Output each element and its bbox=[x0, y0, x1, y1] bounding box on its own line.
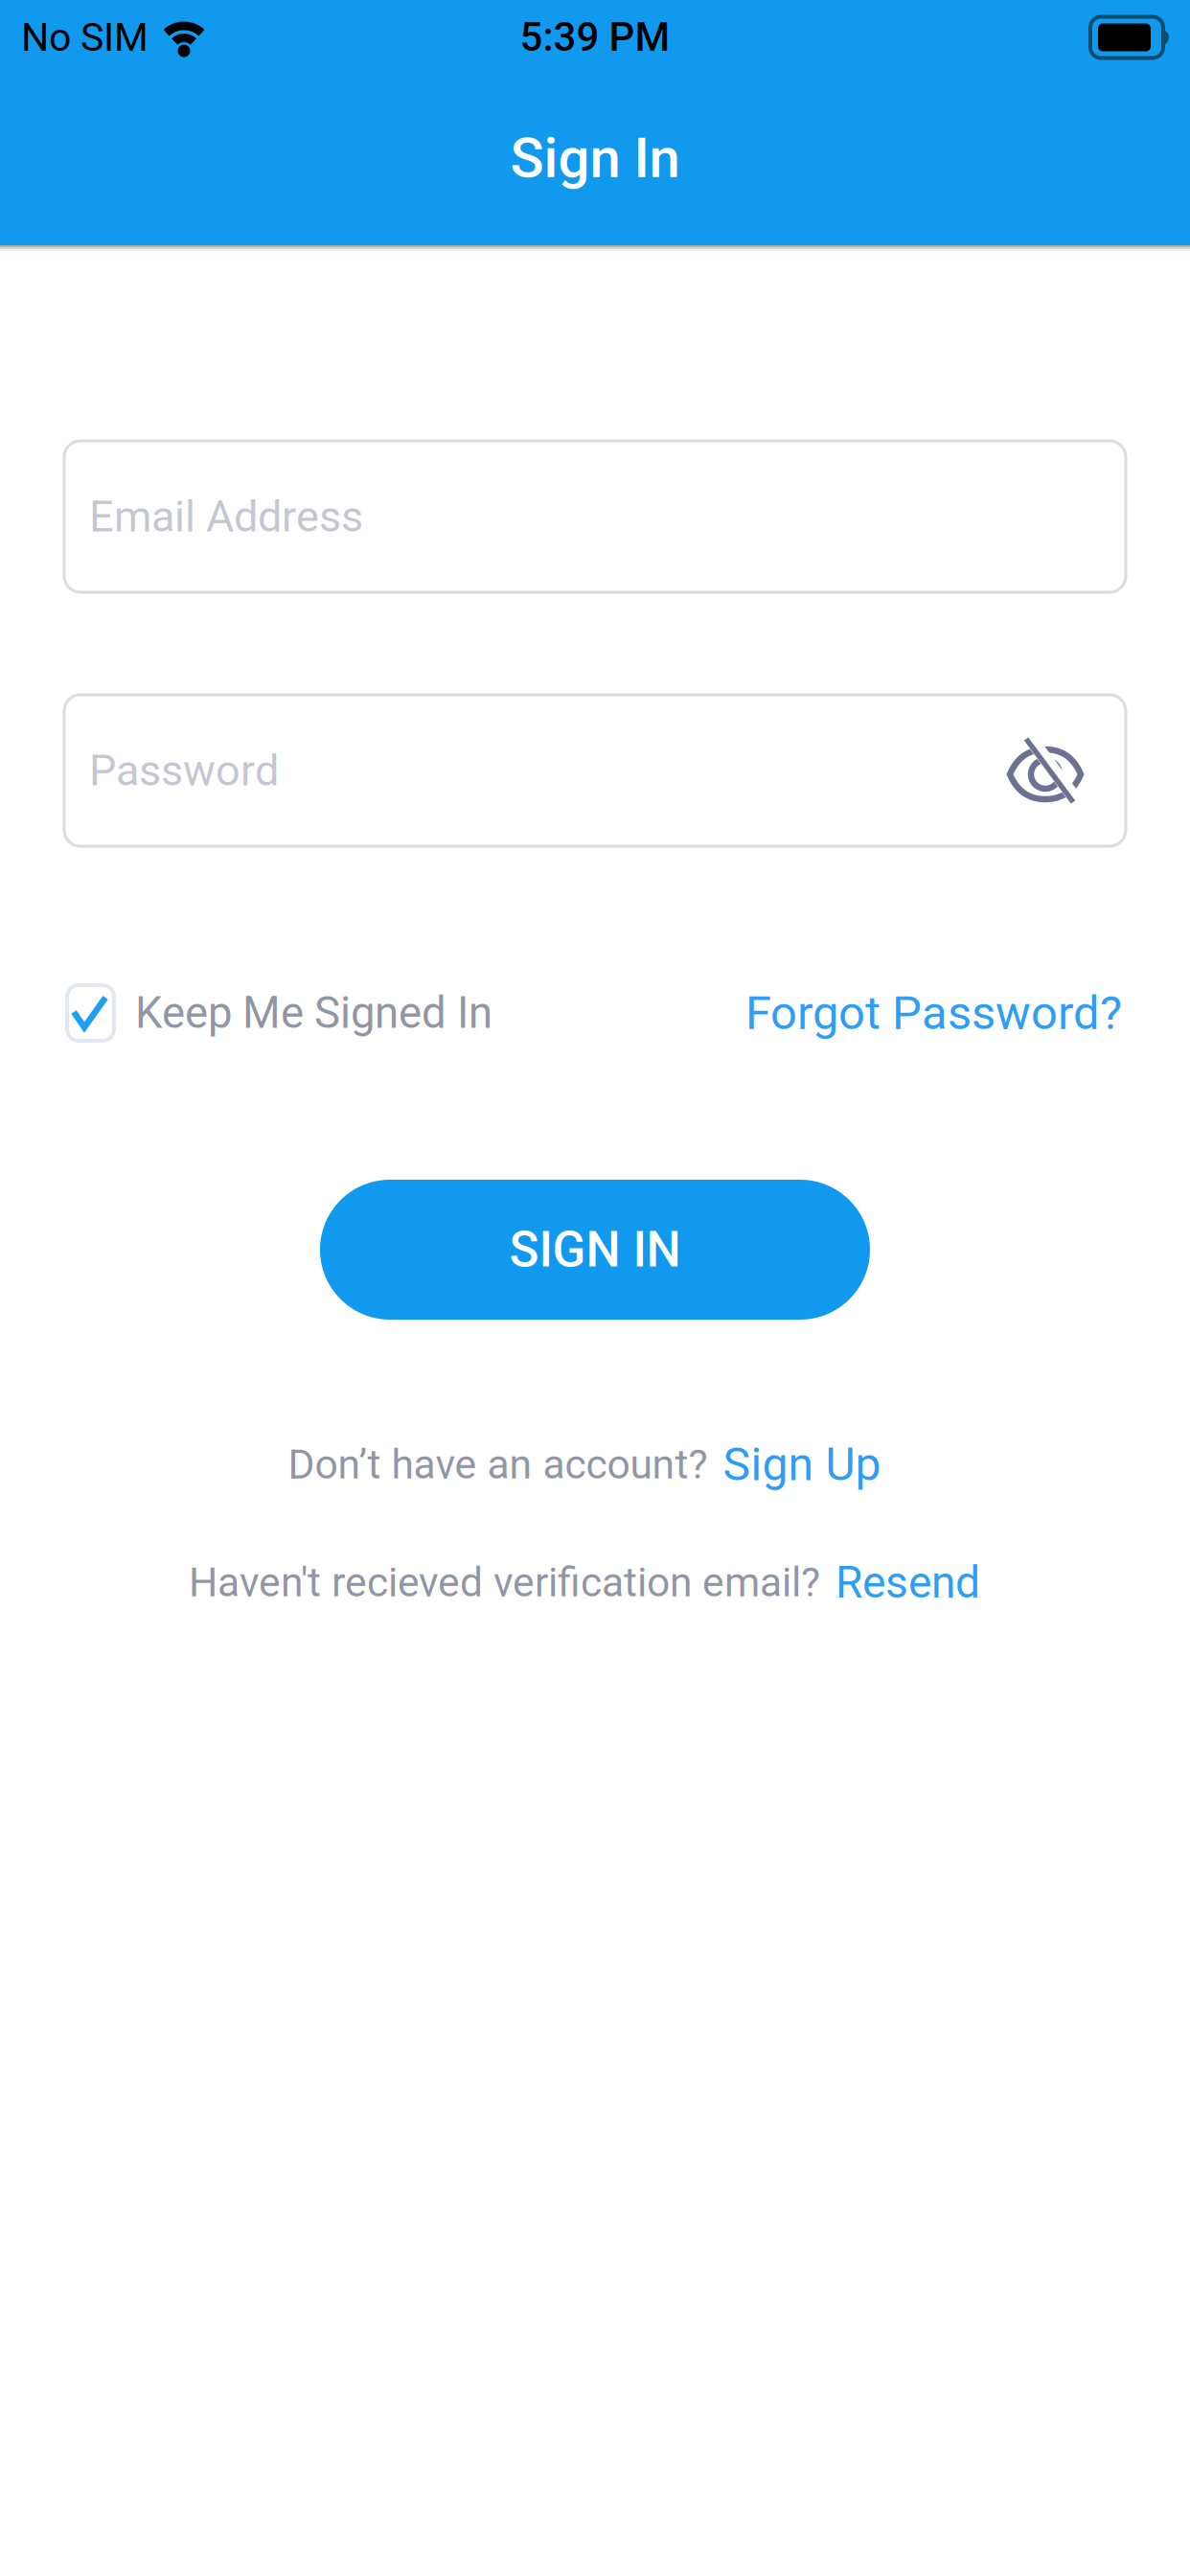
staticText: Email Address bbox=[89, 491, 363, 542]
staticText: Haven't recieved verification email? bbox=[189, 1559, 820, 1606]
staticText: Keep Me Signed In bbox=[135, 987, 492, 1038]
staticText: Forgot Password? bbox=[745, 986, 1122, 1040]
button[interactable]: Forgot Password? bbox=[745, 986, 1122, 1040]
staticText: 5:39 PM bbox=[520, 13, 670, 61]
button[interactable]: Show password bbox=[1007, 742, 1126, 799]
staticText: SIGN IN bbox=[509, 1221, 681, 1278]
staticText: Password bbox=[89, 745, 279, 796]
staticText: Resend bbox=[835, 1557, 980, 1608]
button[interactable]: Sign Up bbox=[723, 1437, 881, 1491]
staticText: No SIM bbox=[21, 14, 149, 60]
button[interactable]: Password bbox=[64, 695, 1126, 846]
staticText: Sign Up bbox=[723, 1437, 881, 1491]
button[interactable]: Keep Me Signed In bbox=[67, 985, 492, 1041]
button[interactable]: SIGN IN bbox=[320, 1180, 870, 1320]
button[interactable]: Resend bbox=[835, 1557, 980, 1608]
staticText: Don’t have an account? bbox=[288, 1441, 708, 1488]
staticText: Sign In bbox=[510, 126, 680, 191]
button[interactable]: Email Address bbox=[64, 441, 1126, 592]
